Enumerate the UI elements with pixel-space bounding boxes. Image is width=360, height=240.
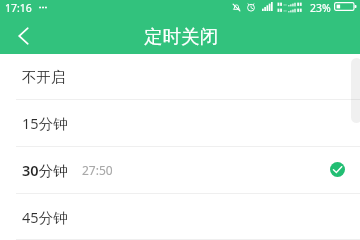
staticText: 15分钟	[22, 113, 68, 133]
staticText: 不开启	[22, 68, 66, 86]
button[interactable]: 30分钟	[0, 147, 360, 193]
button[interactable]: Back	[0, 20, 46, 54]
staticText: 定时关闭	[144, 25, 218, 48]
button[interactable]: 不开启	[0, 54, 360, 99]
staticText: 45分钟	[22, 207, 68, 227]
staticText: 23%	[310, 1, 331, 15]
staticText: 17:16	[5, 1, 32, 15]
button[interactable]: 15分钟	[0, 100, 360, 146]
button[interactable]: 45分钟	[0, 194, 360, 239]
staticText: 30分钟	[22, 160, 68, 180]
staticText: 27:50	[82, 162, 113, 178]
